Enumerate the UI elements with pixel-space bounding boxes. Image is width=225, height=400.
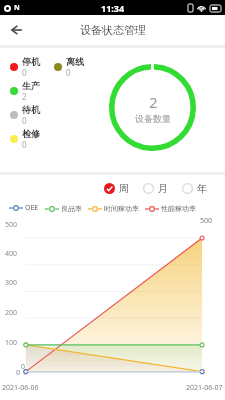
staticText: 检修	[22, 128, 40, 139]
staticText: 400	[5, 249, 18, 259]
staticText: 0	[66, 67, 71, 78]
button[interactable]: 时间稼动率	[88, 204, 139, 213]
staticText: 月	[158, 182, 168, 195]
button[interactable]: 检修	[10, 127, 40, 151]
staticText: 0	[16, 368, 21, 378]
button[interactable]: 生产	[10, 79, 40, 103]
staticText: 时间稼动率	[104, 204, 139, 213]
staticText: 0	[22, 67, 27, 78]
staticText: 200	[5, 308, 18, 318]
staticText: 周	[119, 182, 129, 195]
staticText: 离线	[66, 56, 84, 67]
staticText: 2021-06-07	[186, 383, 223, 393]
staticText: 2021-06-06	[2, 383, 39, 393]
button[interactable]: 月	[141, 180, 170, 197]
button[interactable]: 性能稼动率	[145, 204, 196, 213]
button[interactable]: 周	[102, 180, 131, 197]
button[interactable]: Back	[0, 15, 32, 45]
button[interactable]: 停机	[10, 55, 40, 79]
staticText: 300	[5, 278, 18, 288]
staticText: 生产	[22, 80, 40, 91]
staticText: 2	[22, 91, 27, 102]
staticText: 0	[21, 362, 26, 372]
button[interactable]: 良品率	[45, 204, 82, 213]
staticText: N	[14, 3, 20, 13]
staticText: 良品率	[61, 204, 82, 213]
button[interactable]: OEE	[9, 203, 39, 213]
staticText: OEE	[25, 203, 39, 213]
staticText: 11:34	[101, 2, 125, 14]
staticText: 年	[197, 182, 207, 195]
staticText: 停机	[22, 56, 40, 67]
staticText: 待机	[22, 104, 40, 115]
staticText: 2	[149, 92, 158, 112]
staticText: 设备数量	[135, 113, 171, 124]
button[interactable]: 待机	[10, 103, 40, 127]
staticText: 100	[5, 338, 18, 348]
staticText: 0	[22, 139, 27, 150]
staticText: 设备状态管理	[80, 23, 146, 37]
button[interactable]: 年	[180, 180, 209, 197]
staticText: 500	[5, 220, 18, 230]
staticText: 0	[22, 115, 27, 126]
button[interactable]: 离线	[54, 55, 84, 79]
staticText: 性能稼动率	[161, 204, 196, 213]
staticText: 500	[200, 216, 213, 226]
